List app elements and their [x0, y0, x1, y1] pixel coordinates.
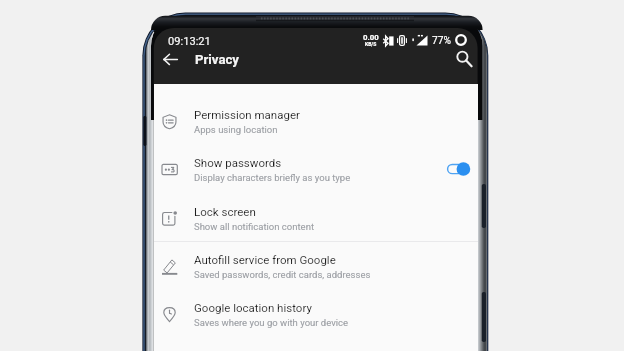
button[interactable]: Lock screen [154, 194, 478, 242]
button[interactable]: Permission manager [154, 97, 478, 145]
button[interactable]: Search [450, 44, 478, 72]
staticText: Saved passwords, credit cards, addresses [194, 269, 371, 280]
staticText: 77% [432, 35, 451, 47]
staticText: 09:13:21 [168, 35, 211, 48]
staticText: Privacy [195, 52, 239, 67]
staticText: Autofill service from Google [194, 253, 336, 266]
staticText: Show passwords [194, 156, 282, 169]
staticText: Display characters briefly as you type [194, 172, 351, 183]
staticText: Apps using location [194, 124, 278, 135]
staticText: Saves where you go with your device [194, 317, 349, 328]
staticText: Show all notification content [194, 221, 314, 232]
button[interactable]: Back [157, 46, 184, 73]
staticText: KB/S [365, 41, 377, 47]
staticText: Lock screen [194, 205, 256, 218]
button[interactable]: Show passwords [154, 145, 478, 193]
button[interactable]: Autofill service from Google [154, 242, 478, 290]
button[interactable]: Google location history [154, 290, 478, 338]
staticText: 0.00 [363, 33, 379, 42]
staticText: Google location history [194, 301, 312, 314]
staticText: Permission manager [194, 108, 300, 121]
button[interactable]: Show passwords toggle [447, 160, 473, 178]
